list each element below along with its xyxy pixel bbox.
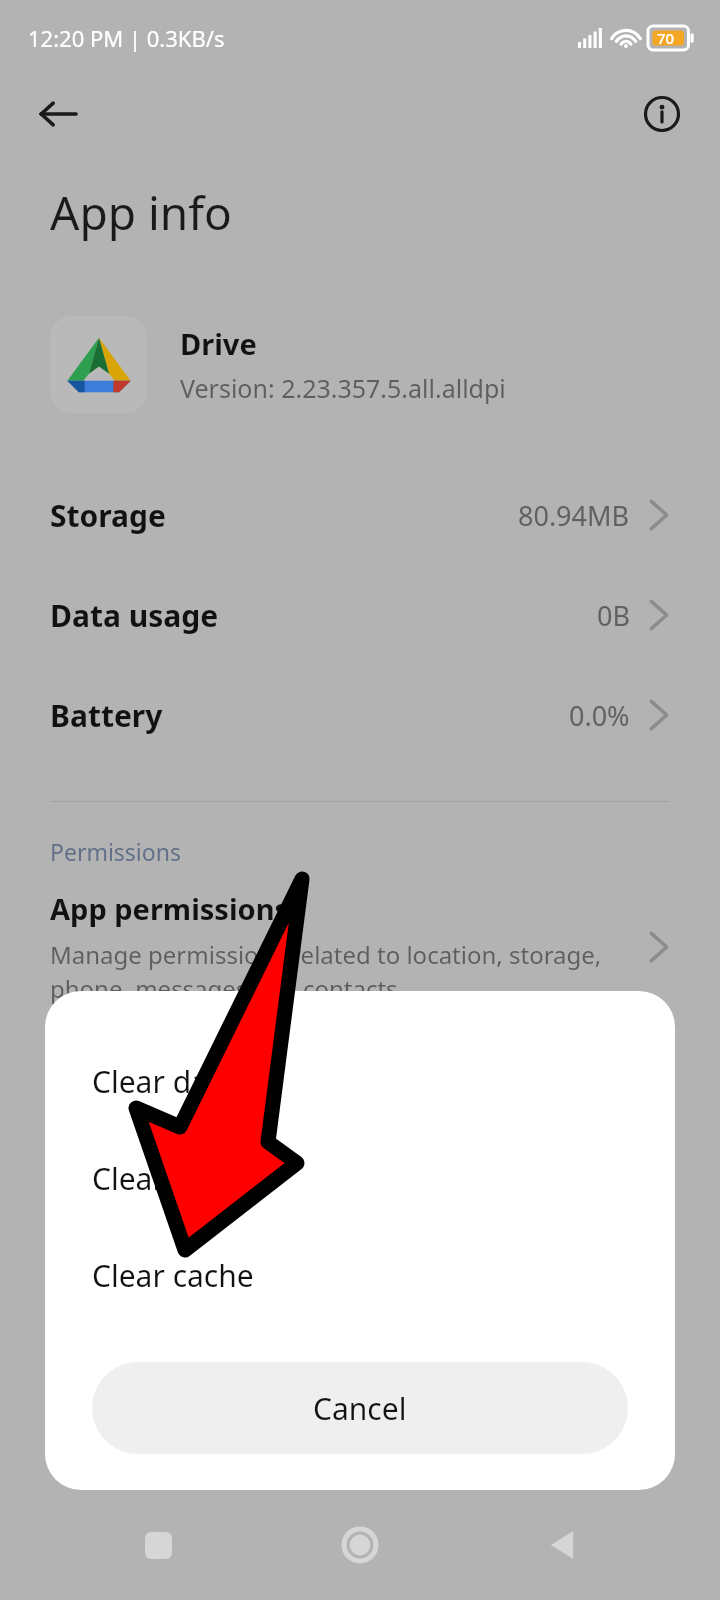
button[interactable]: Back: [30, 86, 86, 142]
staticText: App permissions: [50, 889, 290, 928]
button[interactable]: App info details: [634, 86, 690, 142]
button[interactable]: Clear cache: [45, 1227, 675, 1324]
button[interactable]: Drive: [50, 316, 670, 413]
button[interactable]: Storage: [0, 465, 720, 565]
staticText: Clear cache: [92, 1255, 254, 1296]
staticText: 12:20 PM | 0.3KB/s: [28, 23, 225, 53]
staticText: Data usage: [50, 595, 219, 636]
staticText: Battery: [50, 695, 163, 736]
staticText: Drive: [180, 324, 257, 363]
button[interactable]: Recents: [114, 1501, 202, 1589]
staticText: Permissions: [50, 836, 181, 867]
button[interactable]: Data usage: [0, 565, 720, 665]
button[interactable]: App permissions: [50, 889, 670, 1005]
staticText: Manage permissions related to location, …: [50, 938, 602, 1005]
staticText: 80.94MB: [518, 497, 630, 534]
button[interactable]: Clear data: [45, 1033, 675, 1130]
staticText: Clear all data: [92, 1158, 276, 1199]
staticText: Clear data: [92, 1061, 236, 1102]
button[interactable]: Battery: [0, 665, 720, 765]
staticText: Version: 2.23.357.5.all.alldpi: [180, 371, 506, 405]
button[interactable]: Cancel: [92, 1362, 628, 1454]
button[interactable]: Back: [518, 1501, 606, 1589]
staticText: 70: [657, 28, 675, 48]
staticText: Storage: [50, 495, 166, 536]
button[interactable]: Home: [316, 1501, 404, 1589]
staticText: 0.0%: [569, 697, 630, 734]
staticText: 0B: [597, 597, 630, 634]
button[interactable]: Clear all data: [45, 1130, 675, 1227]
staticText: App info: [50, 181, 232, 244]
staticText: Cancel: [313, 1388, 407, 1429]
